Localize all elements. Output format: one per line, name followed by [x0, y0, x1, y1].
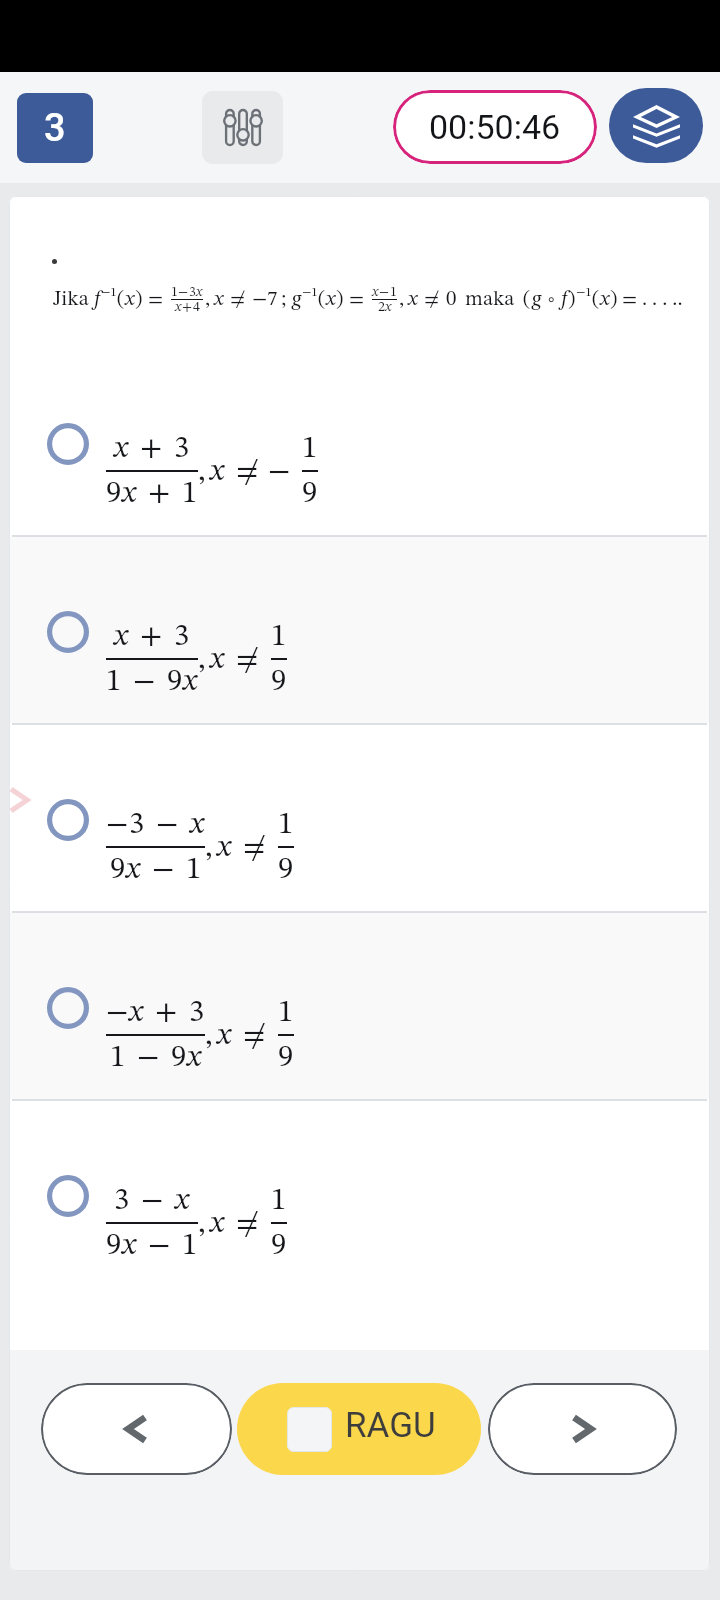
staticText: ,	[399, 289, 405, 310]
staticText: 9	[167, 666, 183, 697]
staticText: x	[214, 289, 224, 310]
staticText: x	[175, 1185, 190, 1216]
staticText: ≠	[230, 289, 246, 310]
staticText: 9	[171, 1042, 187, 1073]
staticText: 1	[390, 285, 397, 299]
staticText: 1	[182, 1230, 198, 1261]
button[interactable]: x	[9, 537, 710, 723]
staticText: +	[182, 300, 193, 314]
staticText: −	[148, 1230, 171, 1261]
staticText: x	[122, 478, 137, 509]
staticText: 1	[106, 666, 122, 697]
staticText: ≠	[243, 1020, 266, 1051]
staticText: 9	[110, 854, 126, 885]
staticText: ∘	[546, 290, 557, 309]
staticText: 9	[302, 478, 318, 509]
staticText: −7	[252, 289, 278, 310]
staticText: Jika	[53, 289, 89, 310]
staticText: +	[140, 621, 163, 652]
staticText: f	[561, 289, 568, 310]
staticText: maka	[465, 289, 515, 310]
staticText: 9	[271, 1230, 287, 1261]
staticText: x	[408, 289, 418, 310]
button[interactable]: RAGU	[237, 1383, 481, 1475]
staticText: −	[268, 456, 291, 487]
staticText: +	[140, 433, 163, 464]
staticText: 1	[182, 478, 198, 509]
staticText: 9	[278, 1042, 294, 1073]
staticText: −	[133, 666, 156, 697]
staticText: ;	[281, 289, 287, 310]
staticText: 3	[174, 621, 190, 652]
staticText: −1	[302, 286, 318, 299]
staticText: −	[106, 809, 129, 840]
staticText: x	[175, 300, 182, 314]
staticText: 2	[378, 300, 385, 314]
staticText: −	[178, 285, 189, 299]
staticText: 3	[44, 106, 66, 151]
staticText: −1	[576, 286, 592, 299]
staticText: )	[135, 289, 143, 310]
staticText: x	[326, 289, 336, 310]
staticText: =	[148, 289, 164, 310]
staticText: )	[568, 289, 576, 310]
staticText: x	[114, 433, 129, 464]
staticText: 1	[278, 809, 294, 840]
staticText: 9	[106, 1230, 122, 1261]
staticText: 9	[278, 854, 294, 885]
staticText: x	[125, 289, 135, 310]
staticText: x	[114, 621, 129, 652]
staticText: 3	[174, 433, 190, 464]
staticText: −	[379, 285, 390, 299]
staticText: =	[622, 289, 638, 310]
staticText: ,	[198, 644, 206, 675]
staticText: 1	[271, 621, 287, 652]
staticText: x	[385, 300, 392, 314]
staticText: x	[372, 285, 379, 299]
staticText: g	[532, 289, 542, 310]
staticText: 1	[186, 854, 202, 885]
staticText: 3	[189, 285, 196, 299]
staticText: 3	[129, 809, 145, 840]
staticText: x	[187, 1042, 202, 1073]
staticText: 1	[171, 285, 178, 299]
staticText: RAGU	[345, 1405, 436, 1446]
staticText: x	[210, 456, 225, 487]
button[interactable]: 00:50:46	[393, 90, 597, 164]
staticText: −	[152, 854, 175, 885]
staticText: +	[155, 997, 178, 1028]
staticText: x	[210, 644, 225, 675]
staticText: x	[126, 854, 141, 885]
staticText: ,	[205, 289, 211, 310]
staticText: −	[156, 809, 179, 840]
button[interactable]: Next	[488, 1383, 677, 1475]
staticText: x	[183, 666, 198, 697]
button[interactable]: 3	[9, 1101, 710, 1350]
staticText: ,	[198, 456, 206, 487]
button[interactable]: −	[9, 913, 710, 1099]
staticText: 9	[106, 478, 122, 509]
staticText: −	[106, 997, 129, 1028]
button[interactable]: −	[9, 725, 710, 911]
staticText: 1	[302, 433, 318, 464]
button[interactable]: Adjust settings	[202, 91, 283, 164]
button[interactable]: Next question	[8, 786, 30, 814]
staticText: x	[129, 997, 144, 1028]
staticText: (	[117, 289, 125, 310]
button[interactable]: Layers	[609, 88, 703, 163]
button[interactable]: 3	[17, 93, 93, 163]
staticText: x	[196, 285, 203, 299]
staticText: 1	[110, 1042, 126, 1073]
staticText: x	[122, 1230, 137, 1261]
staticText: 4	[193, 300, 200, 314]
staticText: x	[190, 809, 205, 840]
button[interactable]: Previous	[41, 1383, 232, 1475]
staticText: f	[94, 289, 101, 310]
button[interactable]: x	[9, 349, 710, 535]
staticText: 1	[271, 1185, 287, 1216]
staticText: x	[217, 832, 232, 863]
staticText: ≠	[424, 289, 440, 310]
staticText: 1	[278, 997, 294, 1028]
staticText: −	[137, 1042, 160, 1073]
staticText: (	[523, 289, 531, 310]
